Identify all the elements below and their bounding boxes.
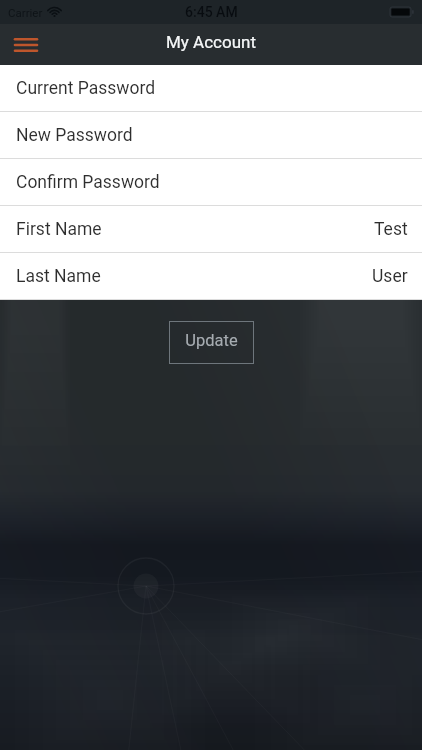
button[interactable]: Confirm Password <box>0 159 422 206</box>
staticText: My Account <box>166 32 257 52</box>
staticText: New Password <box>16 125 133 146</box>
button[interactable]: Update <box>169 321 254 364</box>
staticText: 6:45 AM <box>185 4 238 20</box>
staticText: Test <box>374 219 408 240</box>
staticText: Current Password <box>16 78 156 99</box>
button[interactable]: Open navigation menu <box>0 24 51 65</box>
staticText: Update <box>185 331 238 350</box>
staticText: User <box>372 266 408 287</box>
button[interactable]: Current Password <box>0 65 422 112</box>
button[interactable]: First Name <box>0 206 422 253</box>
staticText: First Name <box>16 219 102 240</box>
button[interactable]: Last Name <box>0 253 422 300</box>
staticText: Confirm Password <box>16 172 160 193</box>
staticText: Carrier <box>8 6 43 19</box>
button[interactable]: New Password <box>0 112 422 159</box>
staticText: Last Name <box>16 266 101 287</box>
